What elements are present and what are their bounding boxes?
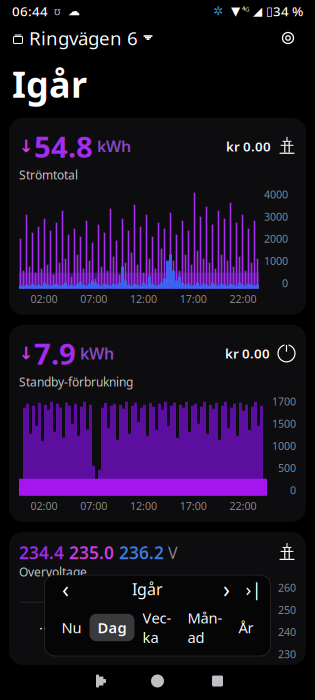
button[interactable]: Månad <box>179 604 230 651</box>
staticText: 17:00 <box>180 499 207 513</box>
staticText: Månad <box>187 608 222 647</box>
staticText: Strömtotal <box>19 167 78 183</box>
staticText: 17:00 <box>180 292 207 306</box>
staticText: kr 0.00 <box>225 344 270 362</box>
button[interactable]: Nu <box>53 614 89 641</box>
staticText: ʊ <box>48 4 60 18</box>
staticText: kWh <box>93 136 131 157</box>
button[interactable]: ↓ <box>9 325 306 522</box>
button[interactable]: Home <box>127 666 187 696</box>
button[interactable]: Ringvägen 6 <box>12 22 153 54</box>
staticText: V <box>164 542 178 563</box>
staticText: 0 <box>290 483 296 497</box>
staticText: 34 % <box>273 2 303 20</box>
staticText: 234.4 <box>19 541 64 564</box>
button[interactable]: År <box>230 614 261 641</box>
button[interactable]: Previous period <box>48 576 82 602</box>
staticText: År <box>238 618 253 637</box>
staticText: 0 <box>282 276 288 290</box>
button[interactable]: Dag <box>89 614 134 641</box>
staticText: 4000 <box>264 187 288 201</box>
staticText: 54.8 <box>34 127 93 166</box>
staticText: 1000 <box>264 254 288 268</box>
staticText: ✲ <box>213 4 223 18</box>
button[interactable]: 234.4 <box>9 532 306 665</box>
staticText: 02:00 <box>30 499 57 513</box>
staticText: 1500 <box>272 416 296 431</box>
staticText: 1700 <box>272 394 296 408</box>
button[interactable]: Recent apps <box>187 666 247 696</box>
staticText: Igår <box>12 60 87 108</box>
button[interactable]: Back <box>67 666 127 696</box>
button[interactable]: ↓ <box>9 118 306 315</box>
button[interactable]: Settings <box>273 23 303 53</box>
button[interactable]: Next period <box>212 576 240 602</box>
staticText: 3000 <box>264 209 288 224</box>
staticText: Nu <box>61 618 81 637</box>
staticText: 1000 <box>272 439 296 453</box>
staticText: 07:00 <box>80 292 107 306</box>
staticText: ‹ <box>62 574 69 604</box>
staticText: 500 <box>278 461 296 475</box>
staticText: Vecka <box>142 608 171 647</box>
staticText: Dag <box>97 618 126 637</box>
staticText: 22:00 <box>230 499 257 513</box>
staticText: 12:00 <box>130 499 157 513</box>
staticText: 07:00 <box>80 499 107 513</box>
button[interactable]: Vecka <box>134 604 179 651</box>
staticText: 250 <box>278 603 296 617</box>
staticText: Overvoltage <box>19 564 87 580</box>
staticText: kWh <box>76 343 114 364</box>
staticText: 2000 <box>264 232 288 246</box>
staticText: ☁ <box>60 4 80 18</box>
staticText: 230 <box>278 647 296 661</box>
staticText: Ringvägen 6 <box>29 26 138 50</box>
button[interactable]: Jump to latest <box>240 576 266 602</box>
staticText: 22:00 <box>230 292 257 306</box>
staticText: 240 <box>278 625 296 639</box>
staticText: ◢ <box>249 4 262 18</box>
staticText: 06:44 <box>12 2 48 20</box>
staticText: ↓ <box>19 343 34 363</box>
staticText: 7.9 <box>34 334 76 373</box>
staticText: › <box>223 574 230 604</box>
staticText: 12:00 <box>130 292 157 306</box>
staticText: 235.0 <box>64 541 114 564</box>
staticText: ▯ <box>262 4 273 18</box>
staticText: kr 0.00 <box>226 137 271 155</box>
staticText: Igår <box>132 578 163 600</box>
staticText: ↓ <box>19 136 34 156</box>
staticText: 236.2 <box>114 541 164 564</box>
staticText: 02:00 <box>30 292 57 306</box>
staticText: Standby-förbrukning <box>19 374 133 390</box>
staticText: ›| <box>245 577 261 601</box>
staticText: 260 <box>278 580 296 595</box>
staticText: ⁴ᴳ <box>240 5 249 17</box>
staticText: ▼ <box>223 4 240 18</box>
